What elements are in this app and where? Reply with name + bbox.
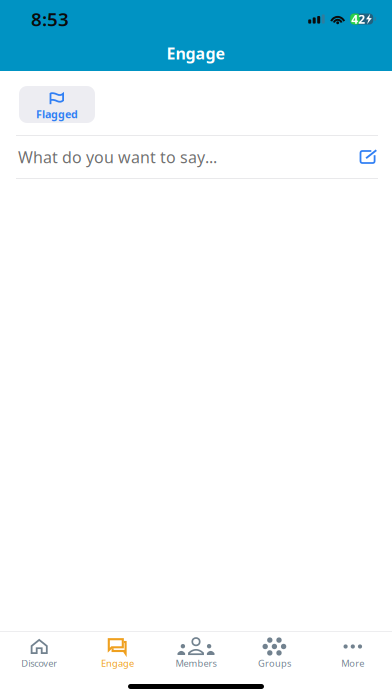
- staticText: Members: [175, 657, 216, 669]
- staticText: Discover: [21, 657, 57, 669]
- button[interactable]: Groups: [235, 632, 314, 676]
- staticText: More: [341, 657, 364, 669]
- staticText: 8:53: [31, 7, 69, 31]
- button[interactable]: Compose: [349, 136, 392, 178]
- button[interactable]: More: [314, 632, 392, 676]
- staticText: Engage: [101, 657, 134, 669]
- button[interactable]: Discover: [0, 632, 78, 676]
- button[interactable]: Flagged: [19, 86, 95, 123]
- button[interactable]: Engage: [78, 632, 157, 676]
- staticText: What do you want to say...: [18, 146, 217, 168]
- staticText: Engage: [166, 43, 225, 64]
- button[interactable]: Members: [157, 632, 235, 676]
- staticText: Groups: [258, 657, 291, 669]
- button[interactable]: What do you want to say...: [0, 136, 349, 178]
- staticText: 42: [351, 11, 365, 27]
- staticText: Flagged: [36, 107, 78, 121]
